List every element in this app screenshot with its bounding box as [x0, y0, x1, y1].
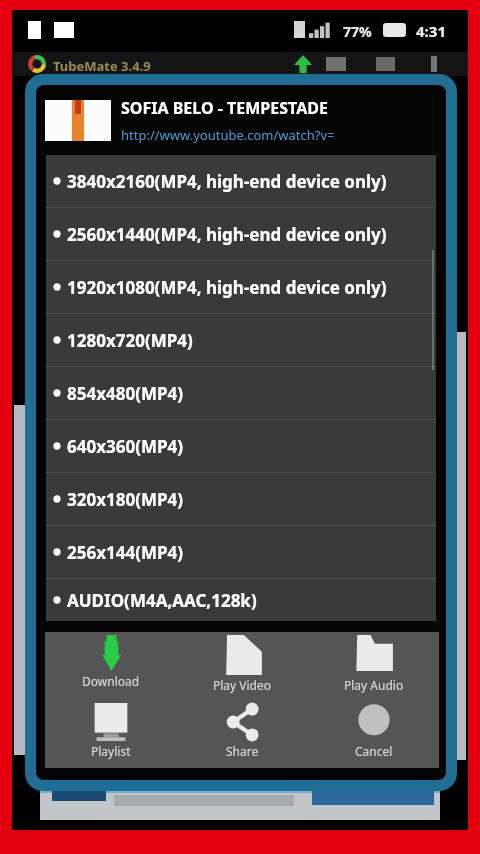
button[interactable]: 640x360(MP4) — [46, 420, 436, 472]
staticText: 77% — [343, 22, 372, 41]
button[interactable]: 3840x2160(MP4, high-end device only) — [46, 155, 436, 207]
staticText: 1280x720(MP4) — [67, 329, 193, 352]
button[interactable]: Share — [177, 700, 308, 768]
staticText: AUDIO(M4A,AAC,128k) — [67, 589, 257, 612]
staticText: TubeMate 3.4.9 — [53, 57, 151, 75]
button[interactable]: SOFIA BELO - TEMPESTADE — [36, 85, 446, 155]
button[interactable]: 1280x720(MP4) — [46, 314, 436, 366]
button[interactable]: AUDIO(M4A,AAC,128k) — [46, 579, 436, 621]
staticText: 640x360(MP4) — [67, 435, 184, 458]
staticText: http://www.youtube.com/watch?v= — [121, 126, 335, 144]
staticText: SOFIA BELO - TEMPESTADE — [121, 97, 328, 119]
staticText: Download — [82, 673, 140, 689]
staticText: 2560x1440(MP4, high-end device only) — [67, 223, 387, 246]
staticText: 256x144(MP4) — [67, 541, 184, 564]
button[interactable]: 1920x1080(MP4, high-end device only) — [46, 261, 436, 313]
staticText: 1920x1080(MP4, high-end device only) — [67, 276, 387, 299]
button[interactable]: Cancel — [308, 700, 439, 768]
button[interactable]: Download — [45, 632, 177, 700]
button[interactable]: Playlist — [45, 700, 177, 768]
button[interactable]: Play Audio — [308, 632, 439, 700]
staticText: 4:31 — [416, 21, 446, 41]
staticText: 3840x2160(MP4, high-end device only) — [67, 170, 387, 193]
button[interactable]: 320x180(MP4) — [46, 473, 436, 525]
staticText: Playlist — [91, 743, 131, 759]
staticText: 320x180(MP4) — [67, 488, 184, 511]
button[interactable]: Play Video — [177, 632, 308, 700]
staticText: 854x480(MP4) — [67, 382, 184, 405]
staticText: Play Video — [213, 677, 272, 693]
button[interactable]: 256x144(MP4) — [46, 526, 436, 578]
staticText: Share — [226, 743, 259, 759]
staticText: Cancel — [355, 743, 393, 759]
staticText: Play Audio — [344, 677, 404, 693]
button[interactable]: 2560x1440(MP4, high-end device only) — [46, 208, 436, 260]
button[interactable]: 854x480(MP4) — [46, 367, 436, 419]
button[interactable]: Downloads — [294, 55, 312, 73]
